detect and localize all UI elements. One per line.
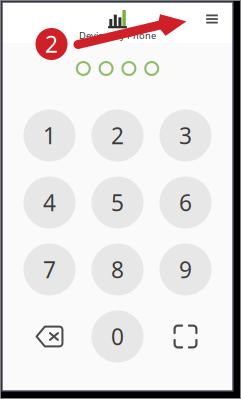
staticText: 3	[179, 120, 192, 150]
button[interactable]: 8	[83, 236, 151, 303]
button[interactable]: 5	[83, 169, 151, 236]
staticText: 9	[179, 254, 192, 284]
staticText: 5	[111, 187, 124, 217]
button[interactable]: 6	[151, 169, 219, 236]
staticText: 6	[179, 187, 192, 217]
button[interactable]: 7	[15, 236, 83, 303]
staticText: 4	[43, 187, 56, 217]
button[interactable]: 4	[15, 169, 83, 236]
staticText: 2	[45, 29, 58, 59]
button[interactable]: Scan	[151, 303, 219, 370]
button[interactable]: 3	[151, 102, 219, 169]
staticText: 8	[111, 254, 124, 284]
staticText: 7	[43, 254, 56, 284]
staticText: 2	[111, 120, 124, 150]
button[interactable]: Menu	[202, 10, 222, 28]
staticText: Device: My Phone	[79, 29, 156, 42]
button[interactable]: 0	[83, 303, 151, 370]
button[interactable]: 1	[15, 102, 83, 169]
staticText: 0	[111, 321, 124, 351]
button[interactable]: Delete	[15, 303, 83, 370]
staticText: 1	[43, 120, 56, 150]
button[interactable]: 2	[83, 102, 151, 169]
button[interactable]: 9	[151, 236, 219, 303]
